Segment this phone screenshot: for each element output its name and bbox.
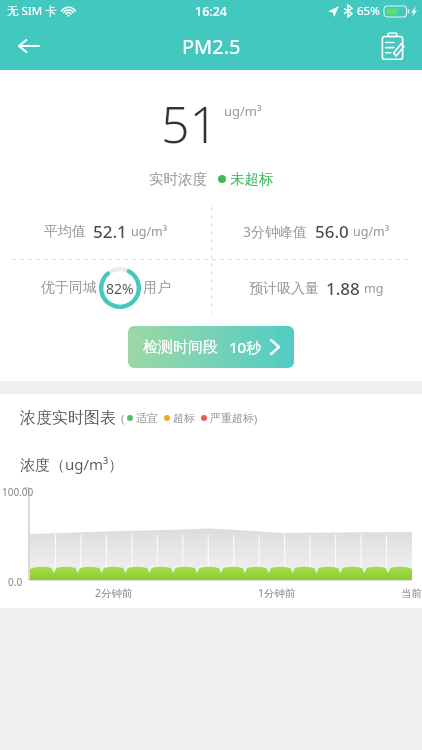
button[interactable]: Back (6, 24, 50, 68)
staticText: 16:24 (195, 3, 228, 20)
staticText: 超标 (173, 411, 195, 425)
staticText: 2分钟前 (95, 586, 133, 600)
staticText: 1分钟前 (258, 586, 296, 600)
staticText: 适宜 (136, 411, 158, 425)
staticText: 52.1 (93, 220, 127, 243)
staticText: 3分钟峰值 (243, 222, 308, 241)
staticText: 浓度实时图表 (20, 408, 116, 428)
staticText: 100.00 (2, 485, 34, 499)
staticText: 严重超标 (210, 411, 254, 425)
staticText: ( (121, 411, 125, 426)
staticText: 56.0 (315, 220, 349, 243)
staticText: 0.0 (8, 575, 23, 589)
staticText: 当前 (401, 587, 422, 600)
staticText: 82% (106, 279, 134, 298)
staticText: 未超标 (230, 170, 274, 188)
button[interactable]: 检测时间段 (128, 326, 294, 368)
staticText: ) (254, 411, 258, 426)
button[interactable]: Records (372, 26, 412, 66)
staticText: 平均值 (44, 223, 86, 241)
staticText: 51 (161, 90, 219, 158)
staticText: 优于同城 (41, 279, 97, 297)
staticText: 无 SIM 卡 (7, 3, 57, 19)
staticText: 1.88 (326, 277, 360, 300)
staticText: 检测时间段 (143, 338, 218, 357)
staticText: mg (364, 280, 384, 297)
staticText: 实时浓度 (149, 170, 207, 188)
staticText: 65% (357, 3, 380, 19)
staticText: ug/m³ (224, 102, 262, 120)
staticText: 预计吸入量 (249, 280, 319, 298)
staticText: 10秒 (229, 337, 262, 357)
staticText: ug/m³ (353, 223, 390, 240)
staticText: PM2.5 (182, 33, 241, 60)
staticText: ug/m³ (131, 223, 168, 240)
staticText: 用户 (143, 279, 171, 297)
staticText: 浓度（ug/m³） (20, 454, 124, 474)
